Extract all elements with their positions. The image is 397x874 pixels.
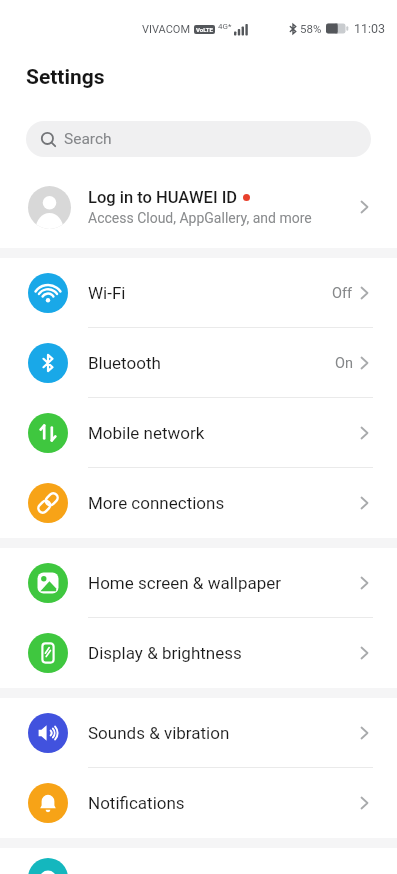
staticText: Settings xyxy=(26,65,105,90)
button[interactable]: Home screen & wallpaper xyxy=(0,548,397,618)
staticText: Home screen & wallpaper xyxy=(88,573,282,593)
staticText: VoLTE xyxy=(196,26,213,33)
button[interactable]: Bluetooth xyxy=(0,328,397,398)
button[interactable]: Display & brightness xyxy=(0,618,397,688)
staticText: VIVACOM xyxy=(142,23,191,36)
button[interactable]: Wi-Fi xyxy=(0,258,397,328)
staticText: Bluetooth xyxy=(88,353,161,373)
staticText: More connections xyxy=(88,493,225,513)
staticText: Notifications xyxy=(88,793,185,813)
staticText: 58% xyxy=(300,22,322,35)
staticText: Log in to HUAWEI ID xyxy=(88,188,238,207)
staticText: 11:03 xyxy=(354,21,386,36)
staticText: On xyxy=(335,355,353,372)
button[interactable]: Search xyxy=(26,121,371,157)
staticText: Sounds & vibration xyxy=(88,723,230,743)
button[interactable]: More connections xyxy=(0,468,397,538)
button[interactable]: Mobile network xyxy=(0,398,397,468)
button[interactable] xyxy=(0,848,397,874)
button[interactable]: Log in to HUAWEI ID xyxy=(0,166,397,248)
button[interactable]: Sounds & vibration xyxy=(0,698,397,768)
staticText: 4G* xyxy=(218,22,232,31)
staticText: Search xyxy=(64,130,112,148)
button[interactable]: Notifications xyxy=(0,768,397,838)
staticText: Display & brightness xyxy=(88,643,242,663)
staticText: Mobile network xyxy=(88,423,205,443)
staticText: Wi-Fi xyxy=(88,283,126,303)
staticText: Access Cloud, AppGallery, and more xyxy=(88,210,312,226)
staticText: Off xyxy=(332,285,353,302)
